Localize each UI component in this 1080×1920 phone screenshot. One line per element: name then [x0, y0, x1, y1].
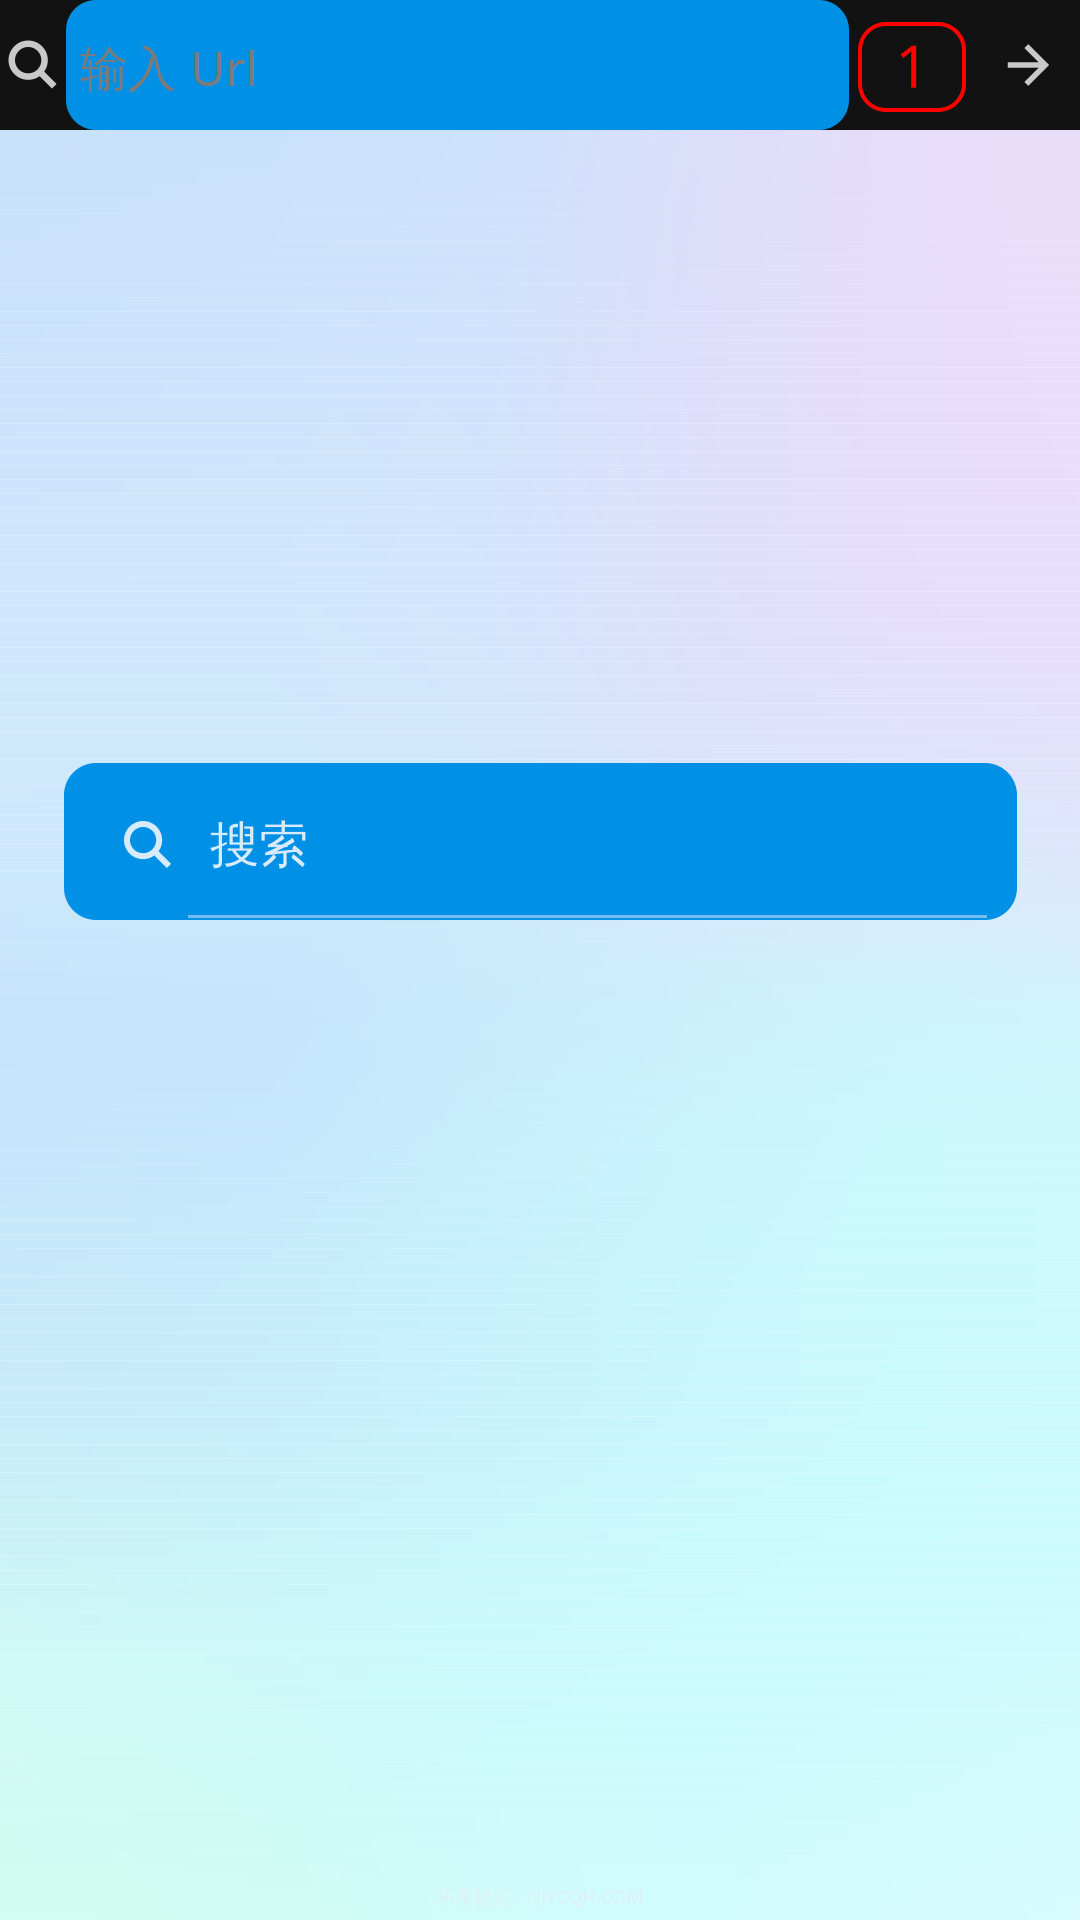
staticText: 搜索 — [210, 815, 308, 875]
staticText: 输入 Url — [80, 36, 257, 99]
button[interactable]: 输入 Url — [66, 0, 849, 130]
button[interactable]: Search — [0, 0, 66, 130]
button[interactable]: Go — [975, 0, 1080, 130]
button[interactable]: Tabs — [849, 0, 975, 130]
staticText: 乐享轻汇 · NJYCQH.COM — [436, 1884, 643, 1909]
staticText: 1 — [895, 26, 929, 104]
button[interactable]: 搜索 — [64, 763, 1017, 920]
